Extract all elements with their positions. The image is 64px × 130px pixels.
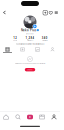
button[interactable]: Profile photo	[23, 15, 37, 29]
button[interactable]: Home	[0, 112, 12, 122]
staticText: Nako Plus	[21, 28, 36, 32]
staticText: Chasing light and quiet mornings · linkt…	[15, 43, 44, 45]
button[interactable]: Notifications	[48, 10, 53, 15]
staticText: @nakoplus	[26, 33, 34, 35]
staticText: 340	[42, 36, 48, 40]
button[interactable]: Tab 3	[30, 47, 45, 53]
button[interactable]: Tab 2	[15, 47, 30, 53]
staticText: Posts	[13, 40, 17, 41]
staticText: Share	[27, 69, 32, 71]
button[interactable]: 340	[37, 36, 52, 41]
staticText: 1,284	[25, 36, 34, 40]
button[interactable]: Create	[24, 112, 36, 122]
staticText: Nothing here yet — start sharing your mo…	[14, 63, 45, 64]
button[interactable]: New post	[43, 10, 47, 15]
button[interactable]: Tab 1	[0, 47, 15, 53]
button[interactable]: 1,284	[23, 36, 37, 41]
button[interactable]: Tab 4	[45, 47, 60, 53]
button[interactable]: Share	[25, 68, 35, 71]
button[interactable]: Back	[2, 10, 7, 15]
button[interactable]: Menu	[54, 10, 58, 15]
staticText: Followers	[26, 40, 33, 41]
button[interactable]: Search	[12, 112, 24, 122]
staticText: Following	[42, 40, 48, 41]
button[interactable]: Reels	[36, 112, 48, 122]
button[interactable]: Profile	[48, 112, 60, 122]
staticText: 12	[13, 36, 17, 40]
button[interactable]: 12	[8, 36, 23, 41]
